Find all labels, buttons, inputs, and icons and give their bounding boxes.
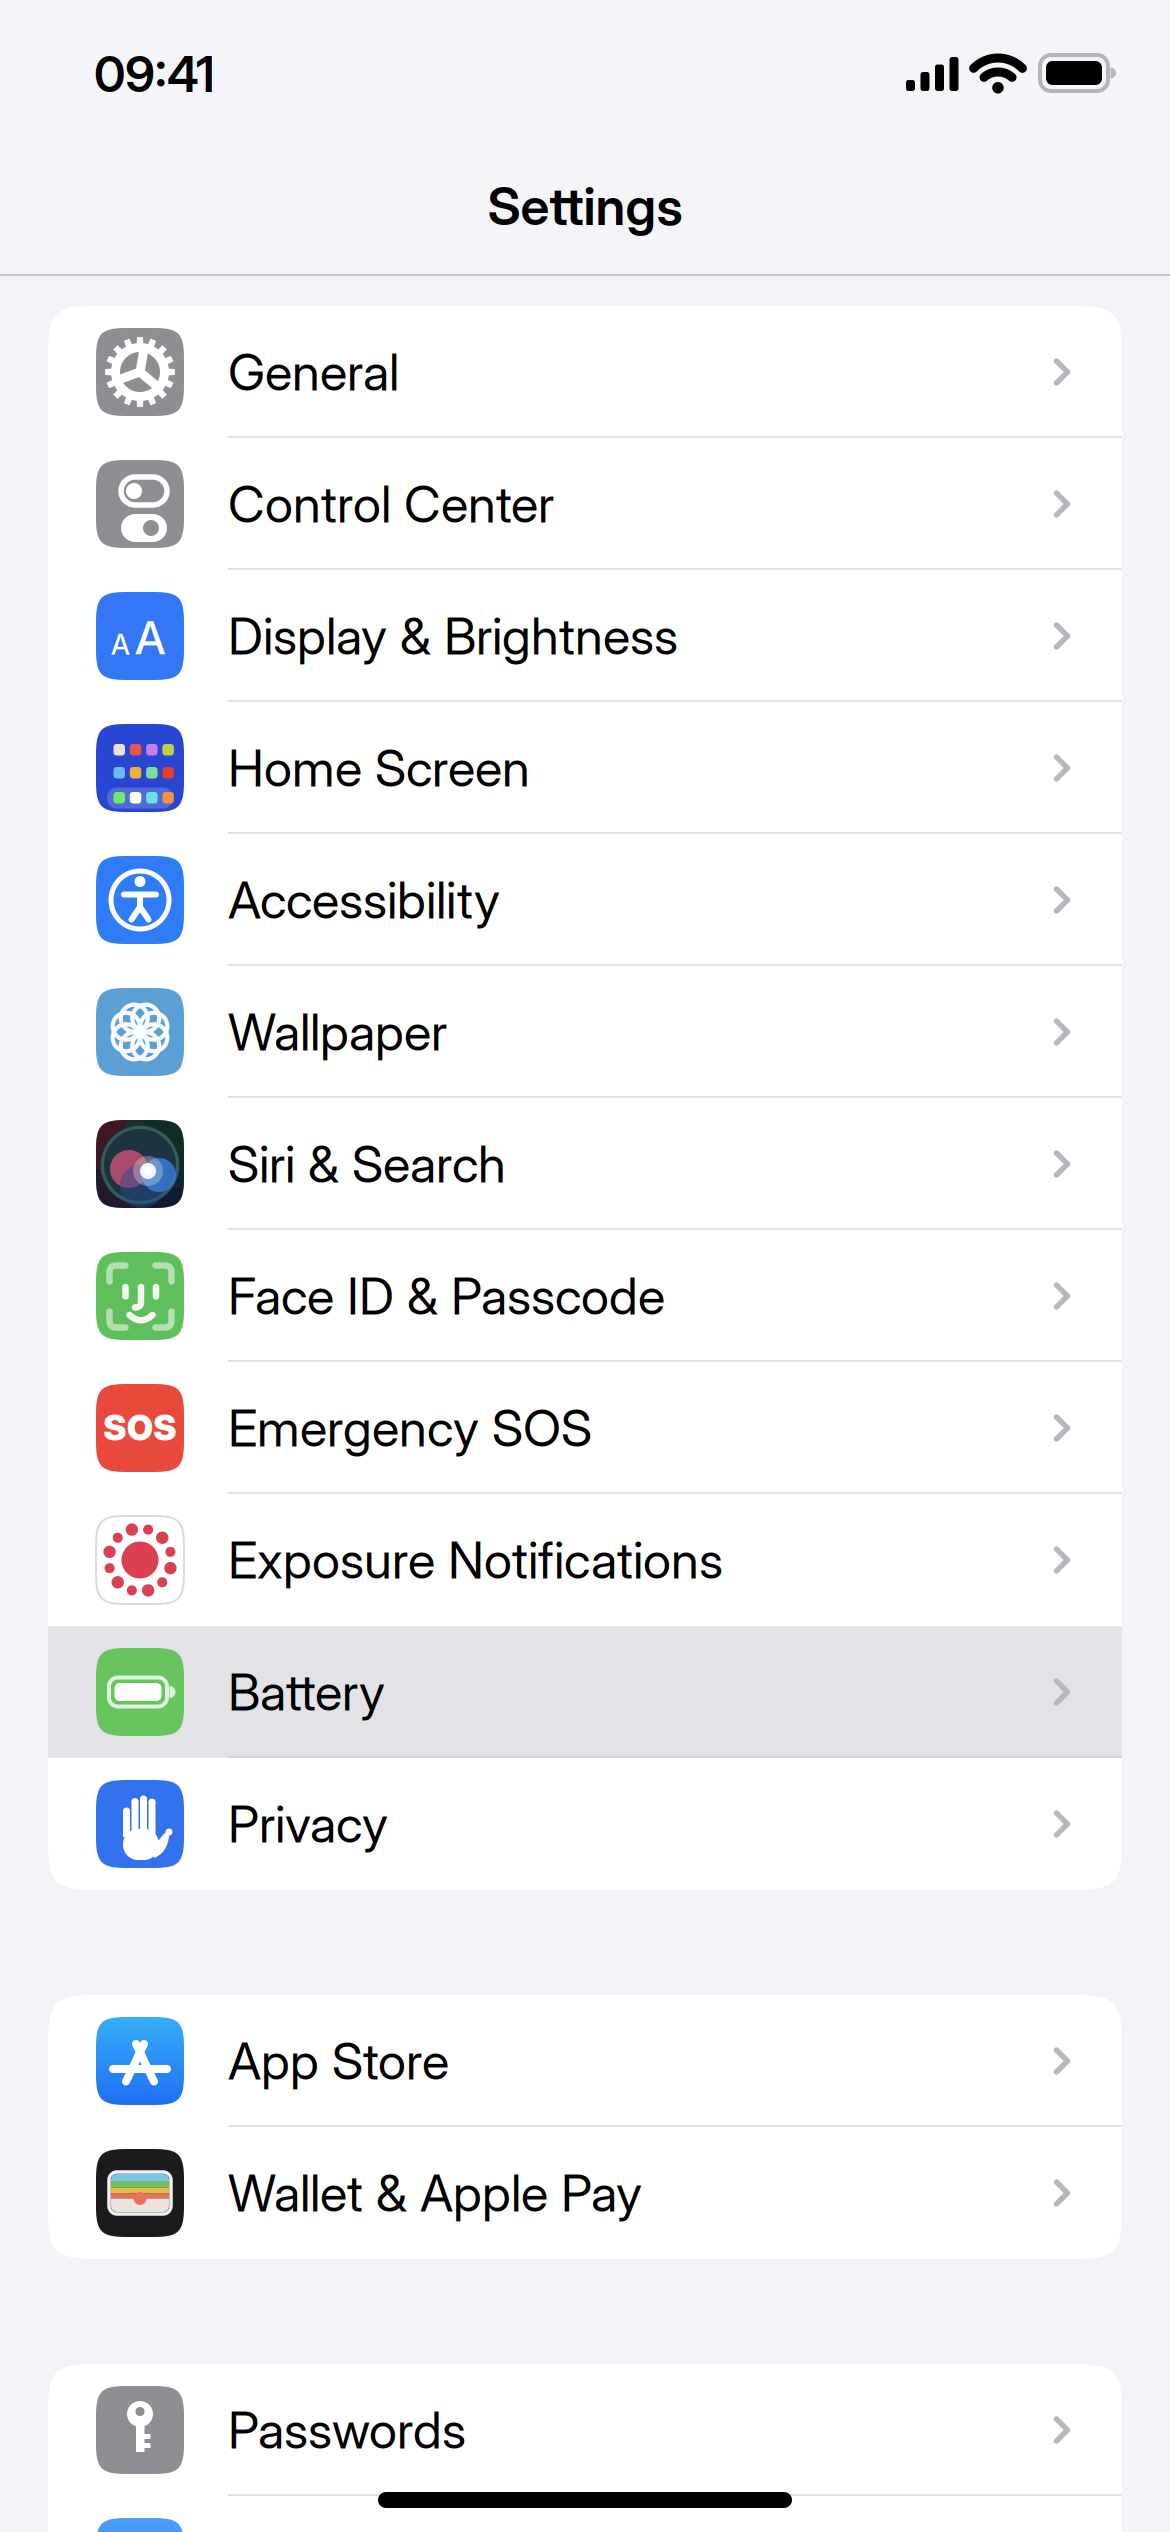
staticText: Emergency SOS [228,1398,592,1458]
button[interactable]: Accessibility [48,834,1122,966]
staticText: Wallpaper [228,1002,447,1062]
button[interactable]: General [48,306,1122,438]
staticText: App Store [228,2031,449,2091]
staticText: Privacy [228,1794,388,1854]
staticText: Passwords [228,2400,466,2460]
button[interactable]: Privacy [48,1758,1122,1890]
staticText: Accessibility [228,870,500,930]
staticText: 09:41 [94,45,215,103]
staticText: SOS [103,1408,177,1448]
staticText: A [111,628,130,661]
button[interactable]: Siri & Search [48,1098,1122,1230]
button[interactable]: Wallet & Apple Pay [48,2127,1122,2259]
button[interactable]: Face ID & Passcode [48,1230,1122,1362]
staticText: Home Screen [228,738,530,798]
button[interactable]: Passwords [48,2364,1122,2496]
staticText: Control Center [228,474,554,534]
staticText: Wallet & Apple Pay [228,2163,642,2223]
button[interactable]: Battery [48,1626,1122,1758]
staticText: Settings [487,175,682,237]
staticText: Display & Brightness [228,606,678,666]
button[interactable]: Control Center [48,438,1122,570]
button[interactable]: App Store [48,1995,1122,2127]
staticText: Exposure Notifications [228,1530,723,1590]
staticText: General [228,342,399,402]
button[interactable]: SOS [48,1362,1122,1494]
staticText: Face ID & Passcode [228,1266,665,1326]
button[interactable]: Exposure Notifications [48,1494,1122,1626]
button[interactable]: Home Screen [48,702,1122,834]
button[interactable]: Wallpaper [48,966,1122,1098]
button[interactable]: A [48,570,1122,702]
staticText: Battery [228,1662,385,1722]
staticText: Siri & Search [228,1134,506,1194]
staticText: A [135,611,166,664]
